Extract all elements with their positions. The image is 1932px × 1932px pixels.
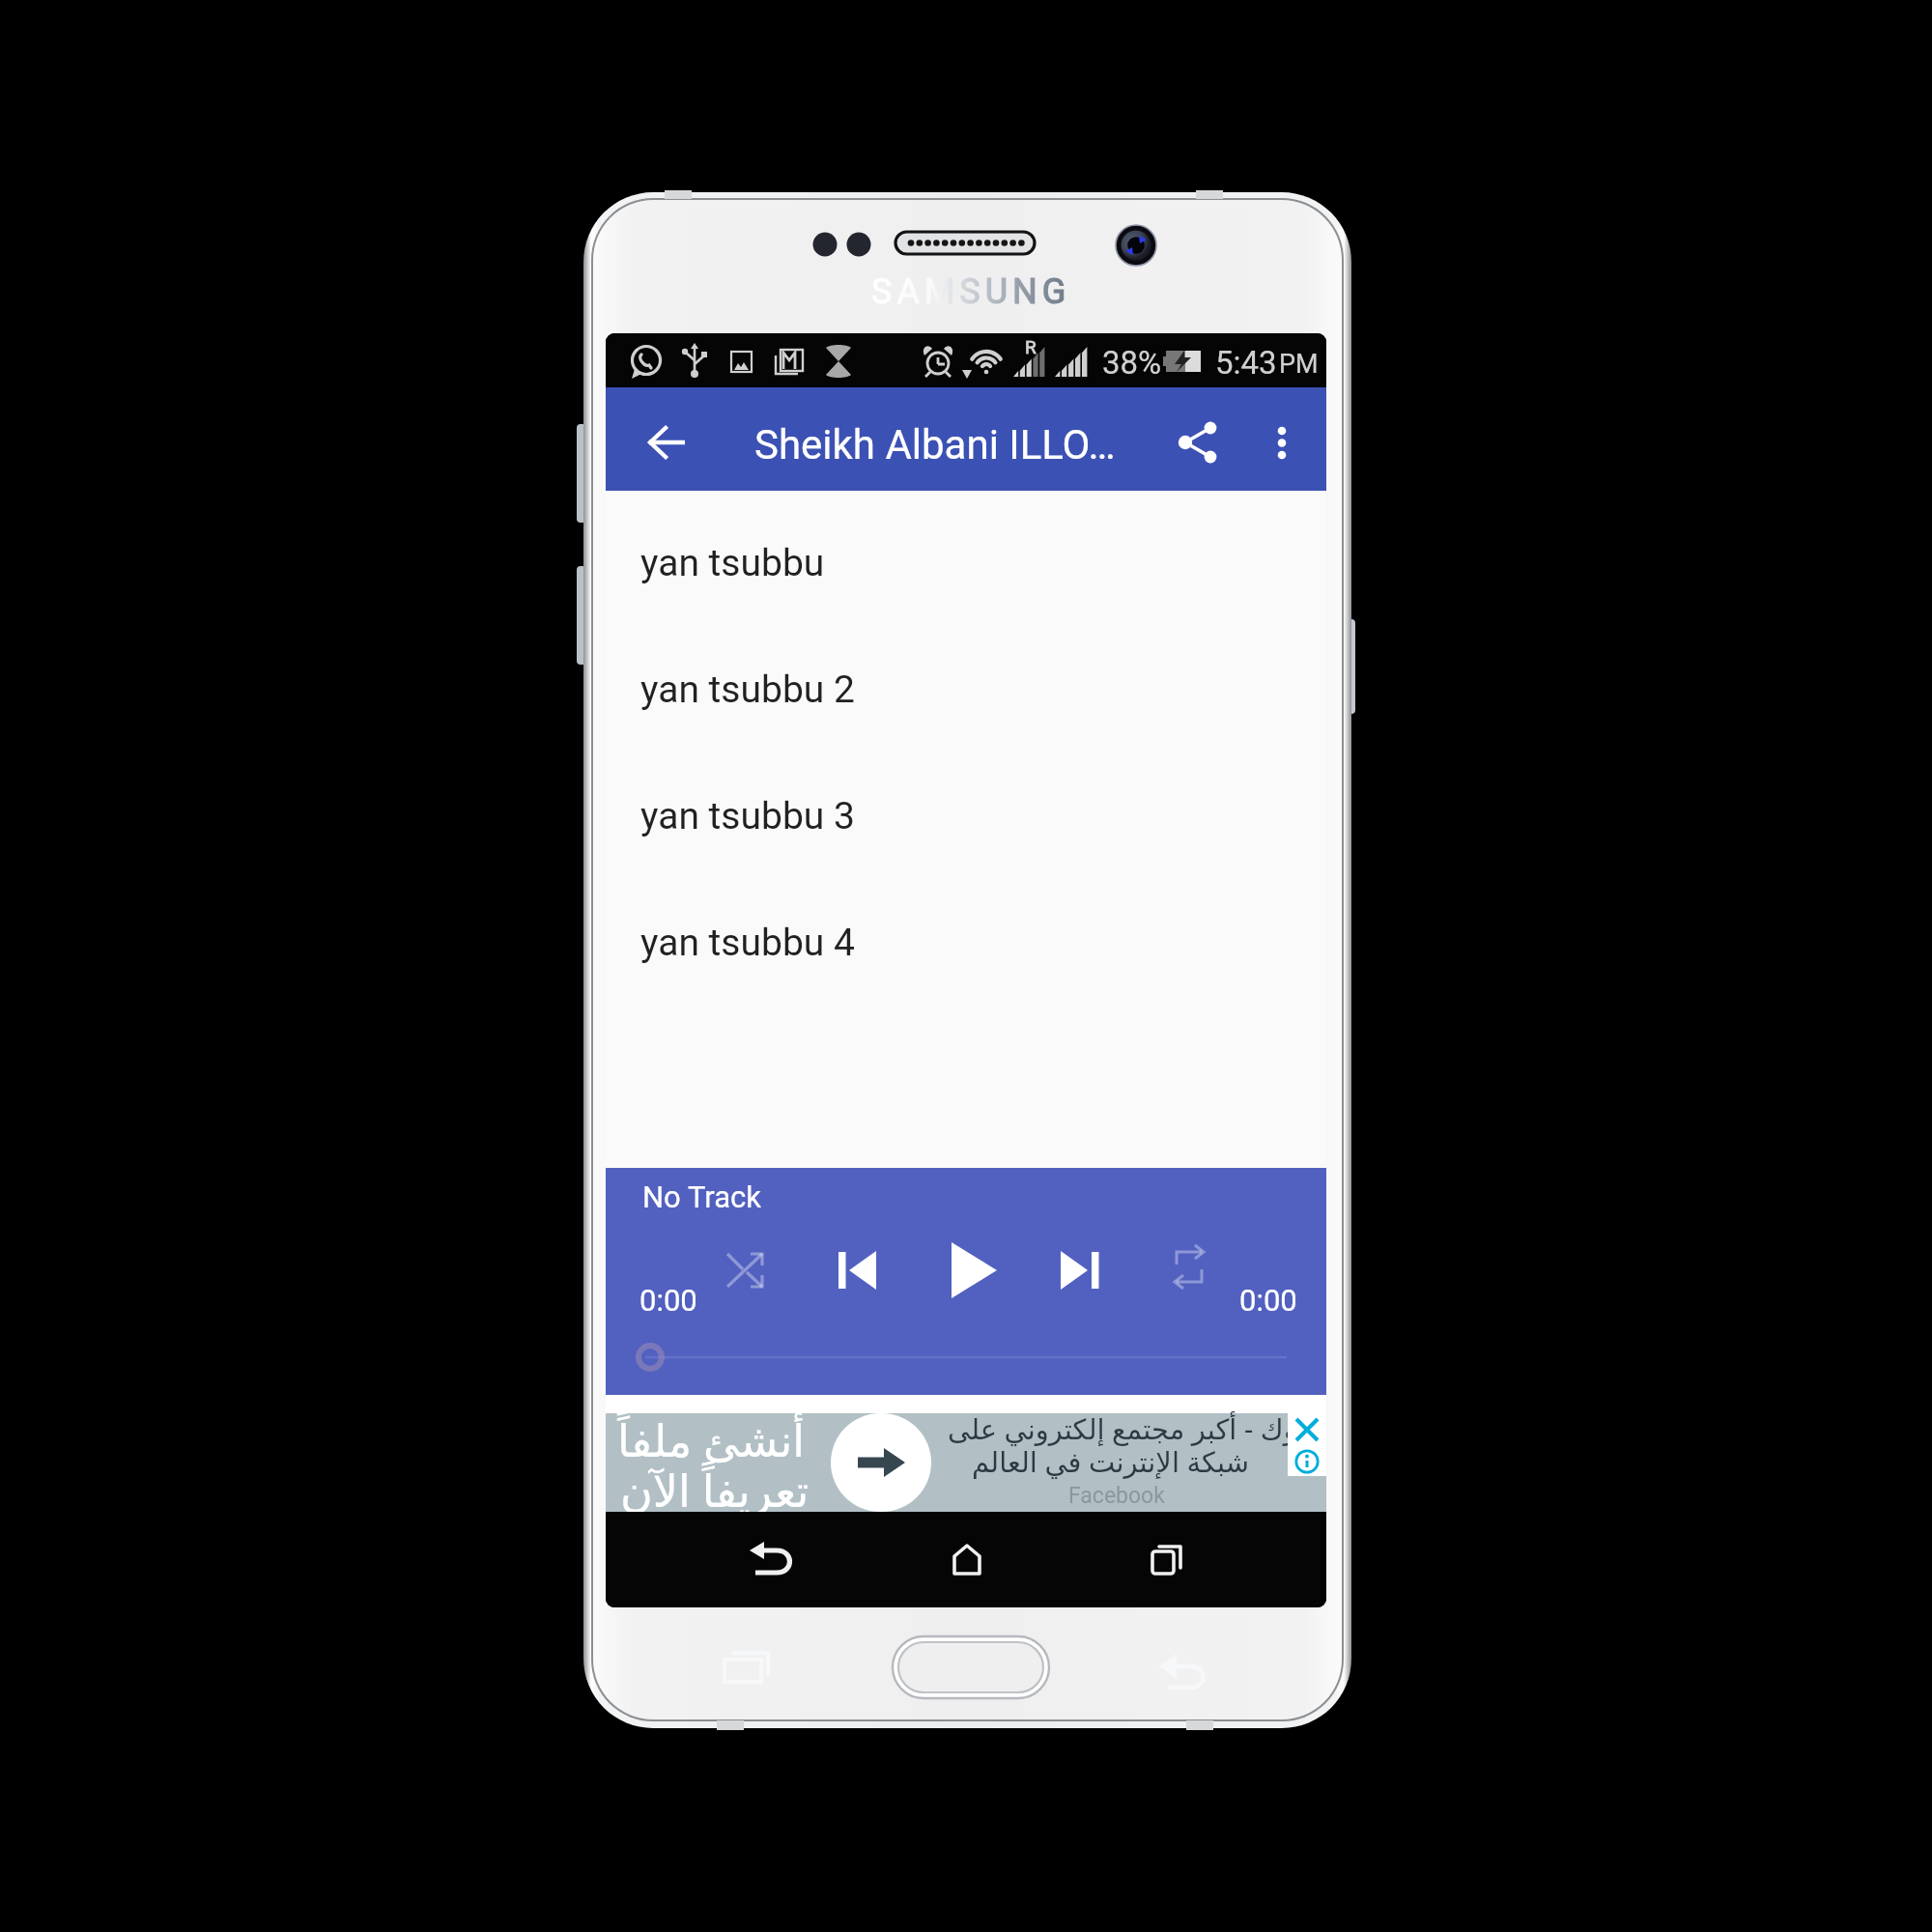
staticText: شبكة الإنترنت في العالم <box>972 1442 1250 1480</box>
button[interactable]: Repeat <box>1158 1236 1222 1299</box>
button[interactable]: Play <box>933 1229 1014 1310</box>
staticText: 0:00 <box>1239 1283 1297 1318</box>
staticText: yan tsubbu <box>640 541 825 585</box>
staticText: Facebook <box>1068 1483 1165 1509</box>
staticText: yan tsubbu 3 <box>640 794 855 838</box>
button[interactable]: Share <box>1156 394 1243 481</box>
button[interactable]: Home <box>917 1512 1013 1607</box>
button[interactable]: yan tsubbu 4 <box>606 879 1326 1006</box>
button[interactable]: yan tsubbu 2 <box>606 626 1326 753</box>
button[interactable]: Home button <box>893 1636 1049 1698</box>
button[interactable]: yan tsubbu 3 <box>606 753 1326 879</box>
staticText: أنشئ ملفاً <box>617 1409 806 1470</box>
button[interactable]: yan tsubbu <box>606 499 1326 626</box>
button[interactable]: Ad action <box>831 1413 931 1512</box>
staticText: SAMSUNG <box>871 271 1071 310</box>
button[interactable]: Back <box>606 387 725 491</box>
button[interactable]: Shuffle <box>713 1237 777 1301</box>
staticText: yan tsubbu 4 <box>640 921 855 965</box>
button[interactable]: Back <box>720 1512 816 1607</box>
button[interactable]: Previous track <box>822 1235 892 1304</box>
staticText: PM <box>1279 349 1319 380</box>
staticText: R <box>1025 336 1037 357</box>
staticText: بوك - أكبر مجتمع إلكتروني على <box>948 1409 1306 1447</box>
button[interactable]: Seek bar <box>638 1332 1294 1382</box>
staticText: 0:00 <box>639 1283 697 1318</box>
button[interactable]: Ad info <box>1288 1446 1326 1476</box>
staticText: Sheikh Albani ILLO… <box>754 421 1116 469</box>
staticText: No Track <box>642 1179 761 1214</box>
button[interactable]: More options <box>1238 394 1325 481</box>
staticText: 38% <box>1102 344 1162 382</box>
staticText: 5:43 <box>1215 344 1277 382</box>
button[interactable]: Recent apps <box>1118 1512 1214 1607</box>
staticText: تعريفاً الآن <box>620 1460 810 1520</box>
staticText: yan tsubbu 2 <box>640 668 855 712</box>
button[interactable]: Next track <box>1044 1235 1114 1304</box>
button[interactable]: Close ad <box>1288 1413 1326 1446</box>
